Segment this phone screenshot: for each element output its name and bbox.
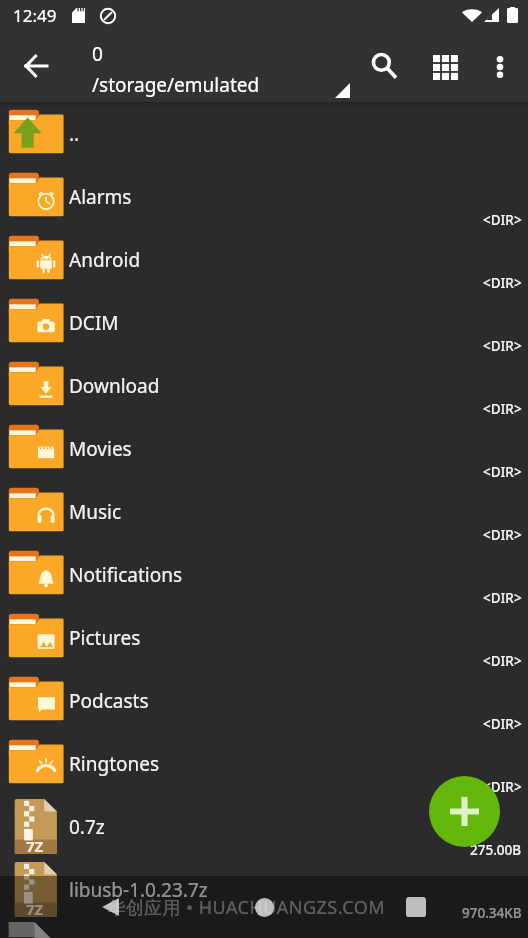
staticText: <DIR>: [483, 400, 522, 418]
staticText: <DIR>: [483, 715, 522, 733]
staticText: <DIR>: [483, 337, 522, 355]
staticText: 7Z: [26, 899, 44, 919]
button[interactable]: Back: [86, 883, 134, 931]
button[interactable]: Grid view: [419, 41, 471, 93]
button[interactable]: [0, 921, 528, 938]
staticText: libusb-1.0.23.7z: [69, 877, 208, 903]
staticText: <DIR>: [483, 652, 522, 670]
staticText: Movies: [69, 436, 132, 462]
button[interactable]: ..: [0, 102, 528, 165]
button[interactable]: Alarms: [0, 165, 528, 228]
staticText: 0.7z: [69, 814, 105, 840]
staticText: ..: [69, 121, 80, 147]
staticText: Download: [69, 373, 160, 399]
button[interactable]: 7Z: [0, 858, 528, 921]
staticText: <DIR>: [483, 778, 522, 796]
staticText: /storage/emulated: [92, 72, 260, 98]
staticText: DCIM: [69, 310, 119, 336]
button[interactable]: DCIM: [0, 291, 528, 354]
button[interactable]: Pictures: [0, 606, 528, 669]
staticText: Pictures: [69, 625, 141, 651]
staticText: 7Z: [26, 836, 44, 856]
button[interactable]: Add: [429, 776, 500, 847]
button[interactable]: Back: [12, 42, 60, 90]
button[interactable]: Recents: [392, 883, 440, 931]
staticText: 华创应用 • HUACHUANGZS.COM: [107, 895, 386, 920]
staticText: <DIR>: [483, 589, 522, 607]
staticText: <DIR>: [483, 274, 522, 292]
staticText: 275.00B: [470, 841, 522, 859]
button[interactable]: 7Z: [0, 795, 528, 858]
staticText: Android: [69, 247, 141, 273]
button[interactable]: Ringtones: [0, 732, 528, 795]
staticText: Notifications: [69, 562, 183, 588]
button[interactable]: Android: [0, 228, 528, 291]
staticText: <DIR>: [483, 211, 522, 229]
other: SD card: [72, 8, 85, 23]
button[interactable]: Home: [240, 883, 288, 931]
button[interactable]: Notifications: [0, 543, 528, 606]
staticText: Music: [69, 499, 122, 525]
button[interactable]: Download: [0, 354, 528, 417]
button[interactable]: More options: [474, 41, 526, 93]
button[interactable]: Music: [0, 480, 528, 543]
staticText: Ringtones: [69, 751, 160, 777]
staticText: 12:49: [13, 4, 57, 27]
button[interactable]: Podcasts: [0, 669, 528, 732]
button[interactable]: Search: [358, 39, 410, 91]
button[interactable]: Movies: [0, 417, 528, 480]
staticText: <DIR>: [483, 463, 522, 481]
staticText: <DIR>: [483, 526, 522, 544]
staticText: 970.34KB: [462, 904, 522, 922]
staticText: Podcasts: [69, 688, 149, 714]
staticText: Alarms: [69, 184, 132, 210]
staticText: 0: [92, 41, 103, 67]
